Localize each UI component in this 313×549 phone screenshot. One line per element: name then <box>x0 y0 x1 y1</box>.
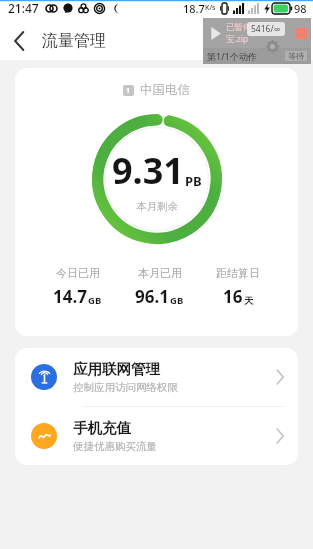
button[interactable]: 应用联网管理 <box>15 348 298 406</box>
staticText: 本月已用 <box>138 266 182 280</box>
staticText: 流量管理 <box>42 31 106 51</box>
staticText: 应用联网管理 <box>73 360 160 378</box>
staticText: 距结算日 <box>216 266 260 280</box>
staticText: PB <box>185 172 202 190</box>
button[interactable]: 手机充值 <box>15 407 298 465</box>
staticText: 等待 <box>288 51 304 61</box>
staticText: 本月剩余 <box>136 200 178 213</box>
button[interactable]: Download task overlay <box>203 18 311 64</box>
button[interactable]: Back <box>0 22 38 60</box>
staticText: 18.7 <box>183 1 205 16</box>
staticText: 5416/∞ <box>251 23 281 35</box>
staticText: 天 <box>244 295 254 307</box>
staticText: 1 <box>126 86 131 96</box>
staticText: 已暂停-列 <box>226 21 263 33</box>
staticText: 16 <box>223 285 243 308</box>
staticText: 98 <box>294 1 307 16</box>
staticText: GB <box>88 294 102 307</box>
staticText: 14.7 <box>53 285 87 308</box>
staticText: 9.31 <box>112 146 184 195</box>
staticText: 中国电信 <box>140 82 190 98</box>
staticText: 手机充值 <box>73 419 131 437</box>
staticText: K/s <box>205 3 216 13</box>
staticText: 宝.zip <box>226 33 249 45</box>
staticText: 便捷优惠购买流量 <box>73 440 157 453</box>
staticText: GB <box>170 294 184 307</box>
staticText: 控制应用访问网络权限 <box>73 381 178 394</box>
staticText: 21:47 <box>8 0 39 16</box>
staticText: 今日已用 <box>56 266 100 280</box>
staticText: 第1/1个动作 <box>207 50 257 62</box>
staticText: 96.1 <box>135 285 169 308</box>
